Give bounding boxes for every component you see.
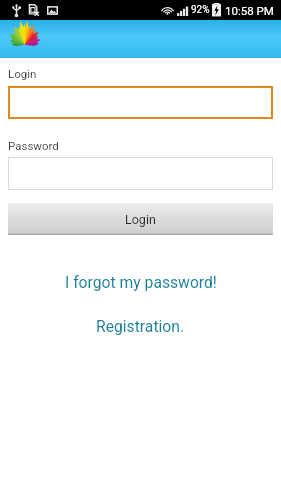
button[interactable] [8, 86, 273, 119]
staticText: 92% [191, 4, 210, 16]
staticText: Login [125, 212, 156, 227]
staticText: 10:58 PM [225, 4, 274, 17]
staticText: I forgot my password! [65, 273, 217, 291]
button[interactable]: I forgot my password! [0, 273, 281, 291]
staticText: Registration. [96, 317, 185, 335]
staticText: Password [8, 139, 59, 152]
button[interactable]: Login [8, 203, 273, 235]
button[interactable]: Registration. [0, 317, 281, 335]
other: App logo [11, 23, 44, 45]
button[interactable] [8, 157, 273, 190]
staticText: Login [8, 67, 37, 80]
